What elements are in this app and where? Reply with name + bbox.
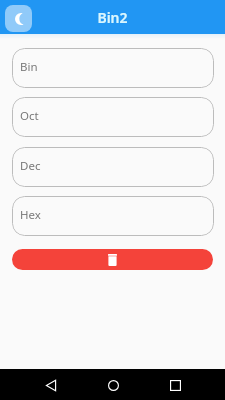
button[interactable]: Oct	[12, 97, 214, 137]
button[interactable]: Delete	[12, 249, 213, 270]
staticText: Hex	[20, 207, 41, 223]
button[interactable]: Hex	[12, 196, 214, 236]
staticText: Oct	[20, 108, 39, 124]
button[interactable]: Back	[37, 371, 65, 399]
staticText: Bin	[20, 59, 38, 75]
button[interactable]: Dec	[12, 147, 214, 187]
staticText: Dec	[20, 158, 41, 174]
button[interactable]: Recent apps	[161, 371, 189, 399]
button[interactable]: Bin	[12, 48, 214, 88]
button[interactable]: Home	[99, 371, 127, 399]
button[interactable]: Toggle dark mode	[5, 5, 32, 32]
staticText: Bin2	[97, 8, 128, 27]
